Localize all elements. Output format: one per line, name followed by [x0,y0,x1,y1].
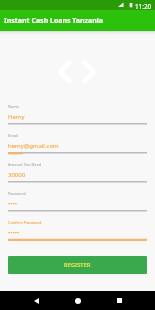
button[interactable]: REGISTER [8,256,147,274]
staticText: hemy@gmail.com [8,142,59,150]
button[interactable]: Recent apps [109,291,129,310]
button[interactable] [8,159,147,184]
staticText: Amount You Need [8,162,42,167]
staticText: Hemy [8,113,25,121]
staticText: ••••• [8,229,20,237]
staticText: REGISTER [64,261,91,269]
staticText: Password [8,191,26,196]
staticText: Email [8,133,18,138]
staticText: •••• [8,200,18,208]
button[interactable]: Back [26,291,46,310]
button[interactable] [8,188,147,213]
button[interactable] [8,130,147,155]
button[interactable] [8,101,147,126]
staticText: Instant Cash Loans Tanzania [4,16,104,26]
button[interactable]: Home [68,291,88,310]
staticText: Confirm Password [8,220,42,225]
button[interactable] [8,217,147,242]
staticText: 30000 [8,171,26,179]
staticText: Name [8,104,19,109]
staticText: 11:20 [135,2,152,11]
